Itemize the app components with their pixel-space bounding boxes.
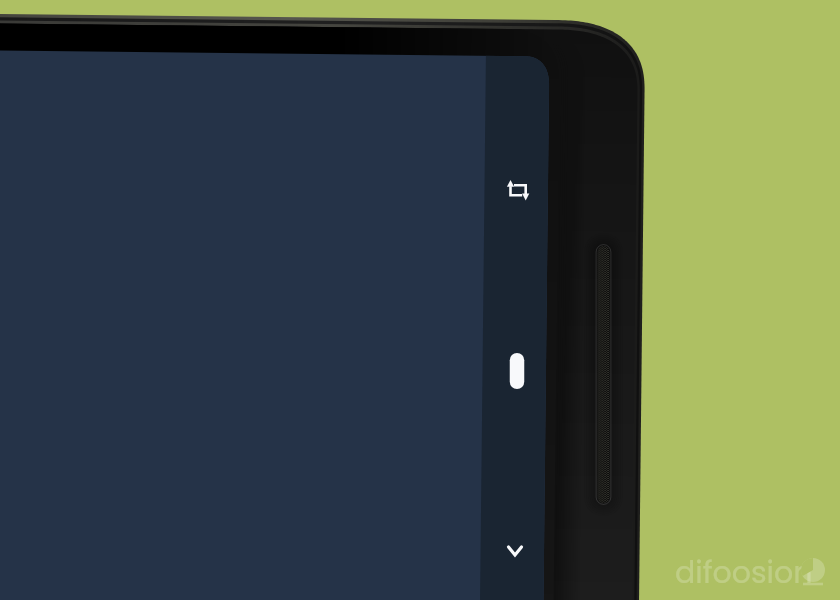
button[interactable]: Phone screen bbox=[0, 0, 840, 600]
